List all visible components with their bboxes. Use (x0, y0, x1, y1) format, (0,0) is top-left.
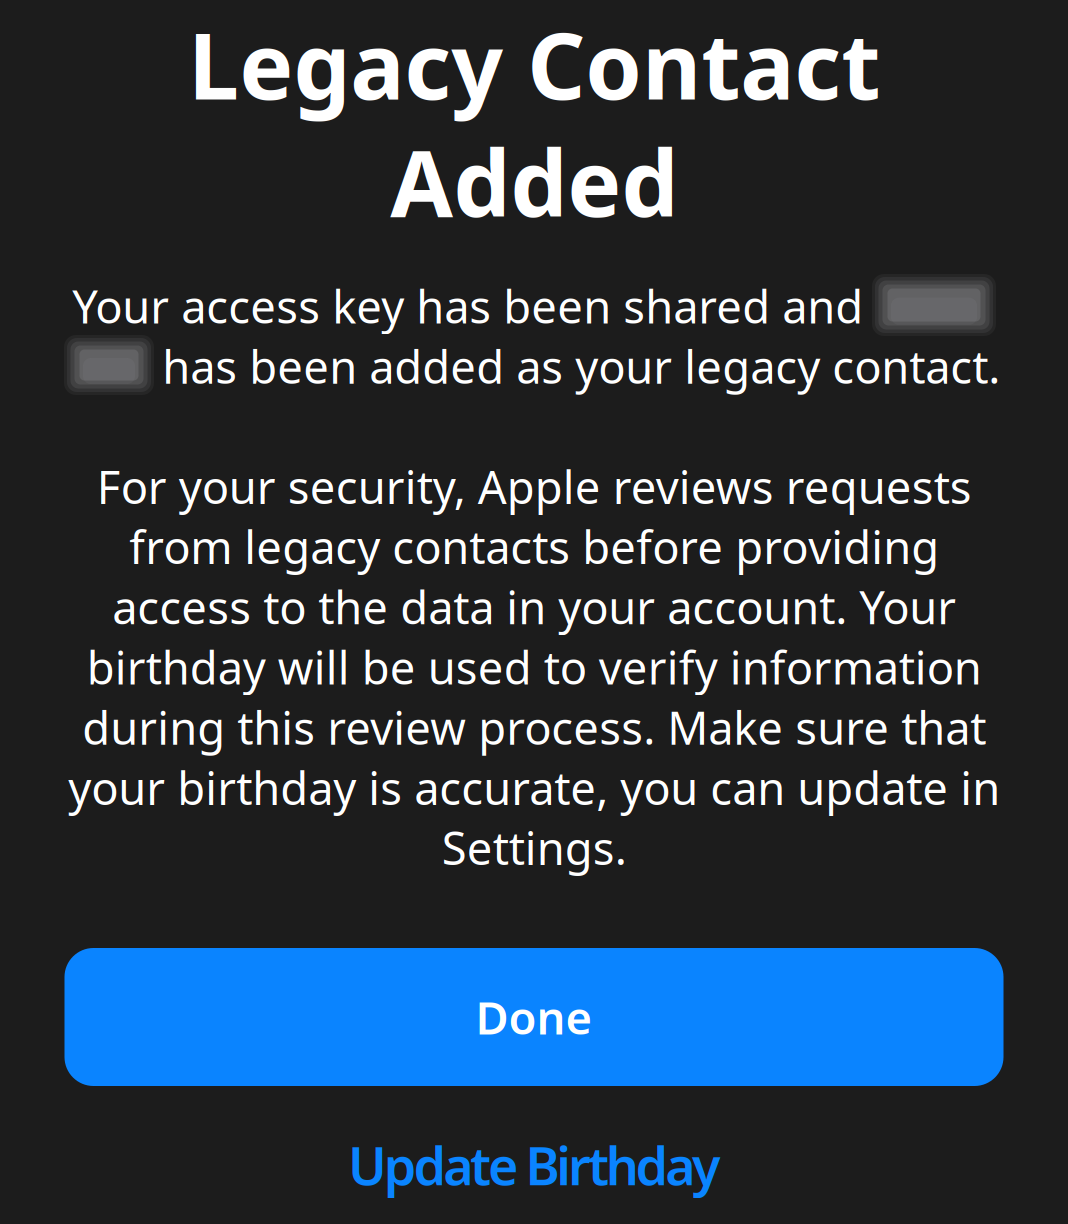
staticText: Update Birthday (348, 1130, 720, 1200)
staticText: Legacy Contact Added (188, 4, 880, 242)
button[interactable]: Update Birthday (64, 1086, 1003, 1224)
staticText: For your security, Apple reviews request… (68, 456, 1000, 878)
button[interactable]: Done (64, 948, 1003, 1086)
staticText: Your access key has been shared and Sara… (68, 276, 1000, 396)
staticText: Done (475, 987, 592, 1047)
